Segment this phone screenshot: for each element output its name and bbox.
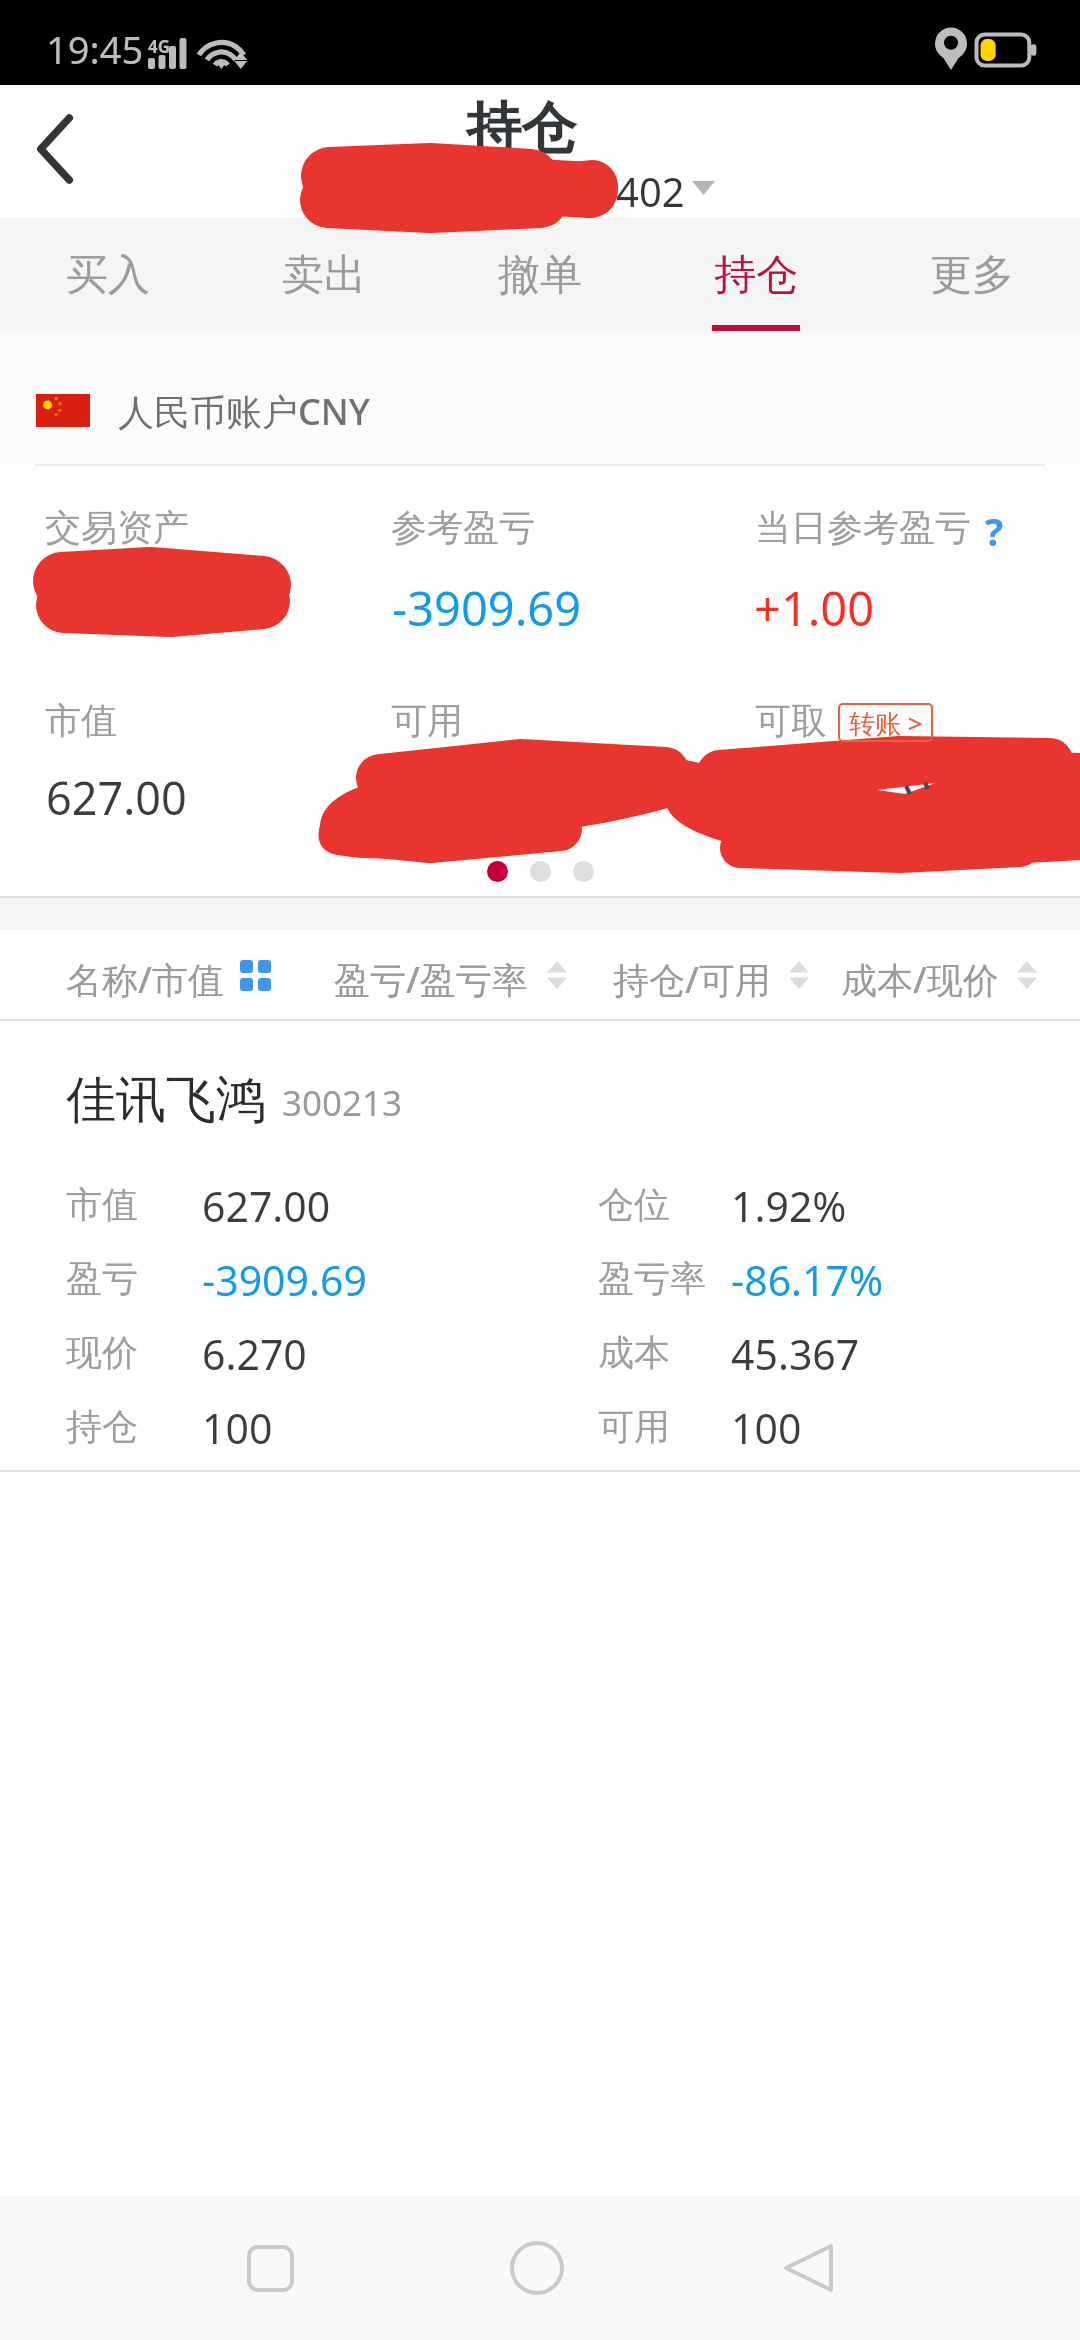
staticText: 19:45 [46, 23, 144, 75]
button[interactable]: 卖出 [216, 218, 432, 333]
button[interactable]: 盈亏/盈亏率 [320, 930, 570, 1019]
button[interactable]: Back [0, 85, 120, 218]
staticText: 可用 [598, 1404, 670, 1449]
staticText: 可用 [391, 698, 463, 743]
button[interactable]: 成本/现价 [828, 930, 1053, 1019]
staticText: 持仓/可用 [613, 955, 771, 1004]
staticText: -3909.69 [392, 576, 582, 640]
staticText: 市值 [45, 698, 117, 743]
staticText: 45.367 [731, 1326, 860, 1382]
staticText: 6.270 [202, 1326, 307, 1382]
staticText: 4G [148, 35, 171, 58]
staticText: 100 [202, 1400, 273, 1456]
staticText: 买入 [66, 249, 150, 302]
button[interactable]: 持仓/可用 [600, 930, 815, 1019]
button[interactable]: 撤单 [432, 218, 648, 333]
button[interactable]: 更多 [864, 218, 1080, 333]
staticText: -86.17% [731, 1252, 884, 1308]
button[interactable]: 转账 > [838, 703, 933, 742]
button[interactable]: Back [764, 2196, 854, 2340]
staticText: 撤单 [498, 249, 582, 302]
staticText: 盈亏 [66, 1256, 138, 1301]
staticText: 成本 [598, 1330, 670, 1375]
staticText: 卖出 [282, 249, 366, 302]
staticText: 人民币账户CNY [118, 387, 370, 436]
staticText: 持仓 [714, 249, 798, 302]
staticText: 盈亏/盈亏率 [334, 955, 528, 1004]
staticText: 1.92% [731, 1178, 847, 1234]
staticText: 300213 [282, 1079, 403, 1127]
button[interactable]: 人民币账户CNY [0, 333, 1080, 463]
staticText: 持仓 [466, 94, 576, 163]
staticText: 627.00 [202, 1178, 331, 1234]
staticText: 成本/现价 [841, 955, 999, 1004]
button[interactable]: Switch account [296, 145, 724, 215]
staticText: 现价 [66, 1330, 138, 1375]
staticText: 转账 > [849, 705, 923, 741]
staticText: 仓位 [598, 1182, 670, 1227]
staticText: 盈亏率 [598, 1256, 706, 1301]
button[interactable]: 买入 [0, 218, 216, 333]
button[interactable]: Home [492, 2196, 582, 2340]
staticText: 佳讯飞鸿 [66, 1069, 266, 1132]
staticText: 402 [616, 164, 685, 218]
staticText: 市值 [66, 1182, 138, 1227]
button[interactable]: 佳讯飞鸿 [0, 1021, 1080, 1472]
button[interactable]: Recent apps [225, 2196, 315, 2340]
staticText: -3909.69 [202, 1252, 367, 1308]
button[interactable]: 名称/市值 [40, 930, 320, 1019]
button[interactable]: 持仓 [648, 218, 864, 333]
staticText: 100 [731, 1400, 802, 1456]
staticText: 持仓 [66, 1404, 138, 1449]
staticText: 参考盈亏 [391, 505, 535, 550]
staticText: 更多 [930, 249, 1014, 302]
staticText: 交易资产 [45, 505, 189, 550]
staticText: +1.00 [754, 576, 875, 640]
staticText: 627.00 [46, 767, 187, 828]
staticText: 可取 [755, 698, 827, 743]
staticText: 名称/市值 [66, 955, 224, 1004]
staticText: 当日参考盈亏 [755, 505, 971, 550]
staticText: ? [985, 505, 1004, 557]
